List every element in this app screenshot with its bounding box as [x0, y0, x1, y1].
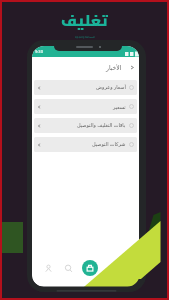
staticText: تسعير — [113, 104, 126, 110]
staticText: أسعار وعروض — [96, 84, 126, 91]
button[interactable]: باقات التغليف والتوصيل — [34, 118, 137, 133]
staticText: الأخبار — [106, 64, 122, 71]
button[interactable]: تسعير — [34, 99, 137, 114]
staticText: للصناعة والتجارة — [75, 34, 95, 40]
staticText: باقات التغليف والتوصيل — [77, 122, 126, 129]
staticText: تغليف — [61, 6, 108, 34]
button[interactable]: شركات التوصيل — [34, 137, 137, 152]
button[interactable]: Search — [64, 264, 73, 273]
button[interactable]: Cart — [82, 260, 98, 276]
staticText: شركات التوصيل — [92, 141, 126, 148]
button[interactable]: أسعار وعروض — [34, 80, 137, 95]
button[interactable]: Profile — [44, 264, 53, 273]
button[interactable]: الأخبار — [37, 57, 135, 78]
staticText: 9:30 — [35, 49, 43, 54]
